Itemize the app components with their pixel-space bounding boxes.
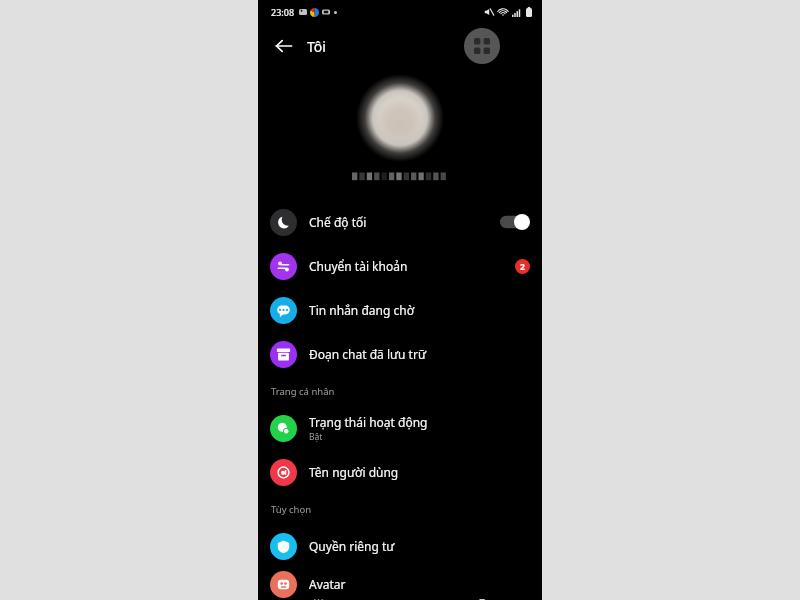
staticText: Tên người dùng xyxy=(309,464,399,480)
staticText: Trang cá nhân xyxy=(271,385,335,398)
staticText: 23:08 xyxy=(271,6,295,18)
button[interactable]: Chế độ tối xyxy=(258,200,542,244)
staticText: Trạng thái hoạt động xyxy=(309,414,428,430)
staticText: Bật xyxy=(309,431,323,443)
button[interactable]: Back xyxy=(266,28,302,64)
button[interactable]: Avatar xyxy=(258,568,542,600)
staticText: Chế độ tối xyxy=(309,214,367,230)
button[interactable]: Tin nhắn đang chờ xyxy=(258,288,542,332)
button[interactable]: Đoạn chat đã lưu trữ xyxy=(258,332,542,376)
staticText: Tùy chọn xyxy=(271,503,312,516)
staticText: Tin nhắn đang chờ xyxy=(309,302,415,318)
staticText: 2 xyxy=(520,261,525,273)
staticText: Đoạn chat đã lưu trữ xyxy=(309,346,427,362)
staticText: Avatar xyxy=(309,576,346,592)
staticText: Quyền riêng tư xyxy=(309,538,395,554)
staticText: Chuyển tài khoản xyxy=(309,258,408,274)
button[interactable]: Menu grid xyxy=(464,28,500,64)
button[interactable]: Tên người dùng xyxy=(258,450,542,494)
button[interactable] xyxy=(356,74,444,162)
button[interactable]: Trạng thái hoạt động xyxy=(258,406,542,450)
staticText: Tôi xyxy=(307,37,326,56)
button[interactable]: Chuyển tài khoản xyxy=(258,244,542,288)
button[interactable]: Dark mode toggle xyxy=(500,214,530,230)
button[interactable]: Quyền riêng tư xyxy=(258,524,542,568)
